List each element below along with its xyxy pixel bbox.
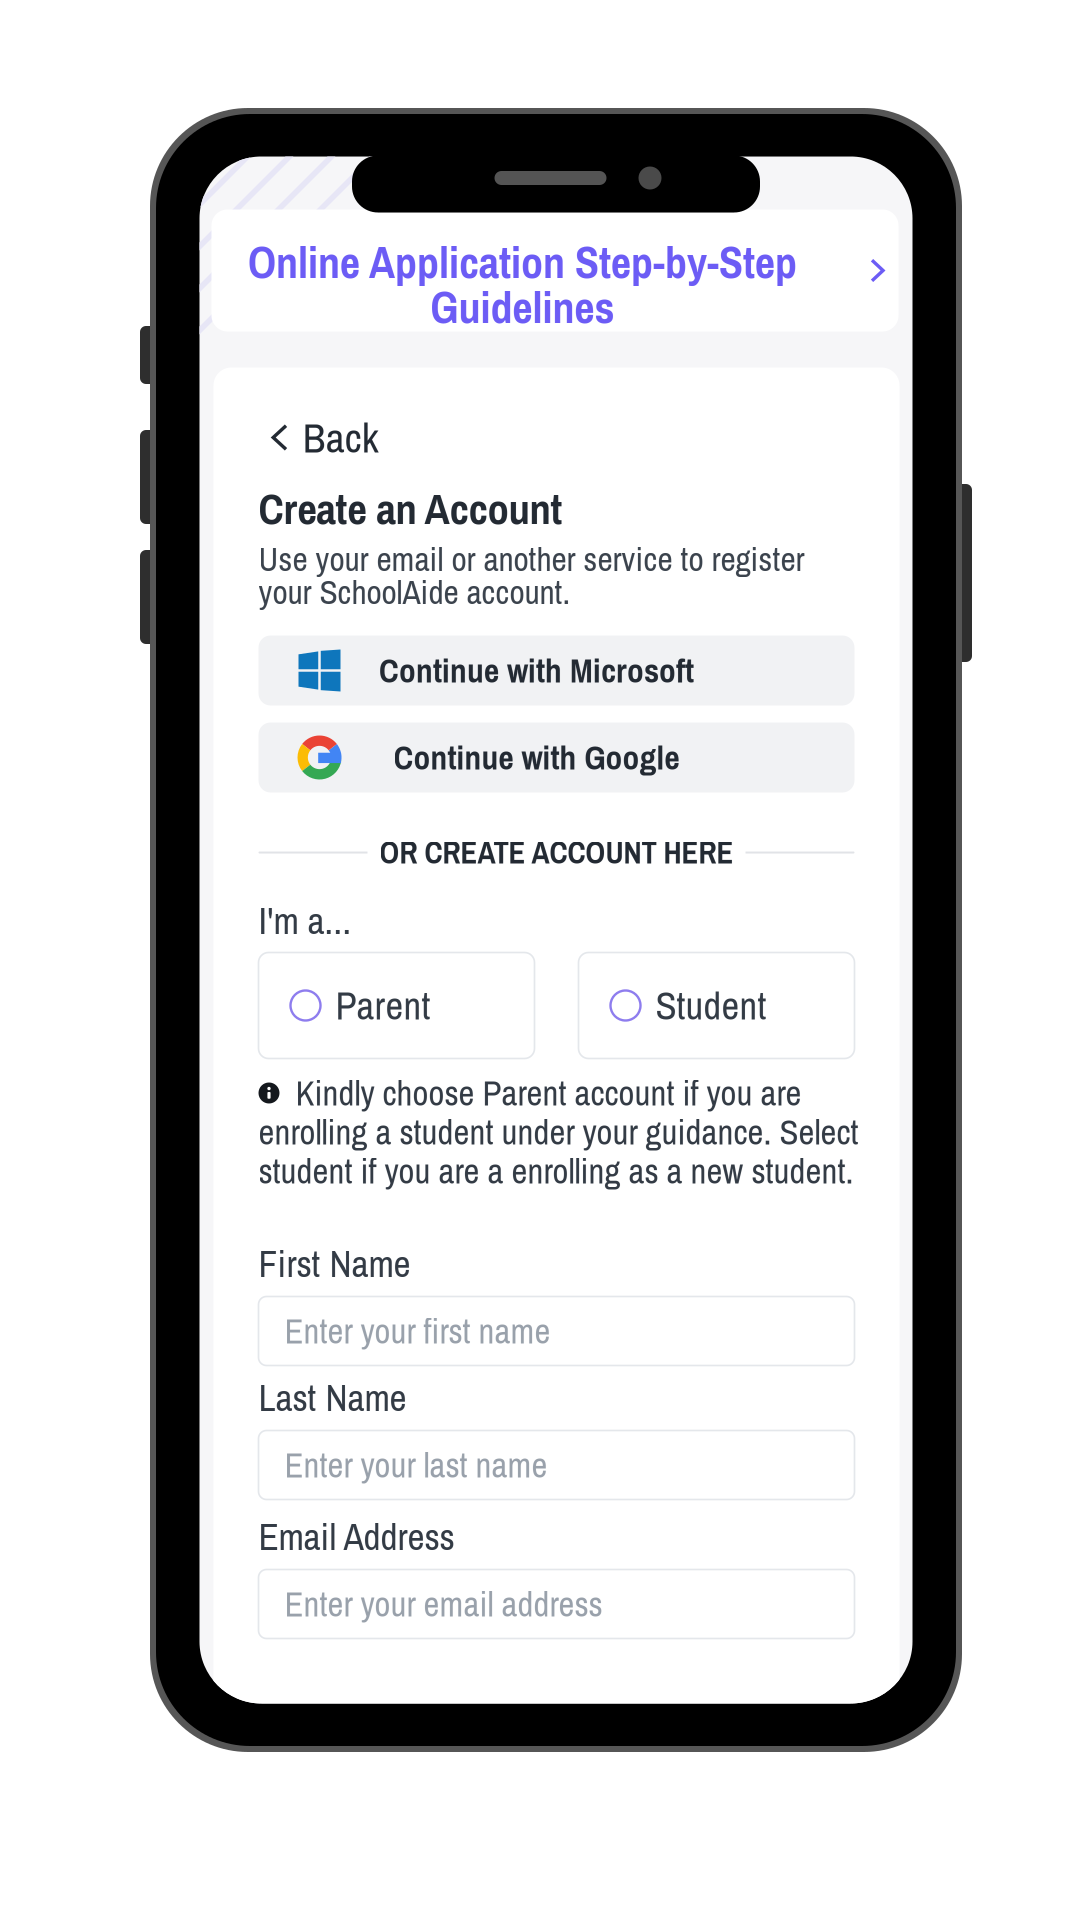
staticText: I'm a... bbox=[258, 895, 351, 946]
staticText: Last Name bbox=[258, 1372, 406, 1423]
staticText: Continue with Google bbox=[393, 735, 679, 780]
staticText: Guidelines bbox=[430, 277, 614, 337]
staticText: Kindly choose Parent account if you are bbox=[295, 1070, 801, 1116]
staticText: your SchoolAide account. bbox=[258, 570, 570, 614]
button[interactable]: Student bbox=[578, 952, 854, 1058]
staticText: Enter your email address bbox=[284, 1581, 602, 1627]
staticText: Enter your last name bbox=[284, 1442, 547, 1488]
button[interactable]: Online Application Step-by-Step bbox=[211, 216, 898, 338]
staticText: student if you are a enrolling as a new … bbox=[258, 1148, 853, 1194]
button[interactable]: Parent bbox=[258, 952, 534, 1058]
staticText: Back bbox=[303, 410, 379, 465]
staticText: Online Application Step-by-Step bbox=[248, 232, 797, 292]
staticText: enrolling a student under your guidance.… bbox=[258, 1109, 858, 1155]
staticText: First Name bbox=[258, 1238, 410, 1289]
button[interactable]: Continue with Google bbox=[258, 722, 854, 792]
staticText: Create an Account bbox=[258, 480, 562, 537]
staticText: Continue with Microsoft bbox=[379, 648, 694, 693]
staticText: OR CREATE ACCOUNT HERE bbox=[379, 832, 733, 873]
button[interactable]: Continue with Microsoft bbox=[258, 635, 854, 705]
staticText: Student bbox=[655, 979, 766, 1032]
staticText: Email Address bbox=[258, 1511, 454, 1562]
staticText: Enter your first name bbox=[284, 1308, 550, 1354]
button[interactable]: Back bbox=[271, 414, 379, 460]
staticText: Parent bbox=[335, 979, 430, 1032]
staticText: Use your email or another service to reg… bbox=[258, 537, 804, 581]
